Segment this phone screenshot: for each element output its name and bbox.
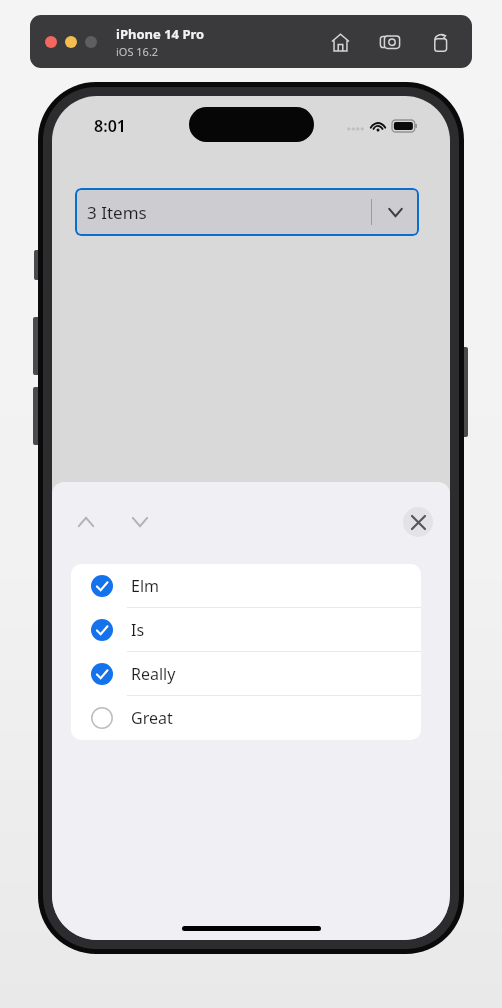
button[interactable]: Close — [403, 507, 433, 537]
button[interactable]: 3 Items — [75, 188, 419, 236]
button[interactable]: Is — [71, 608, 421, 652]
staticText: Really — [131, 663, 176, 685]
button[interactable]: Screenshot — [374, 26, 406, 58]
staticText: iPhone 14 Pro — [116, 25, 205, 43]
button[interactable]: Home — [324, 26, 356, 58]
button[interactable]: Next field — [118, 500, 162, 544]
button[interactable]: Previous field — [64, 500, 108, 544]
staticText: Is — [131, 619, 145, 641]
staticText: iOS 16.2 — [116, 44, 159, 59]
button[interactable]: Elm — [71, 564, 421, 608]
button[interactable]: Great — [71, 696, 421, 740]
staticText: Elm — [131, 575, 159, 597]
button[interactable]: Rotate — [424, 26, 456, 58]
staticText: 3 Items — [87, 201, 147, 224]
button[interactable]: Really — [71, 652, 421, 696]
staticText: 8:01 — [94, 115, 126, 137]
staticText: Great — [131, 707, 173, 729]
